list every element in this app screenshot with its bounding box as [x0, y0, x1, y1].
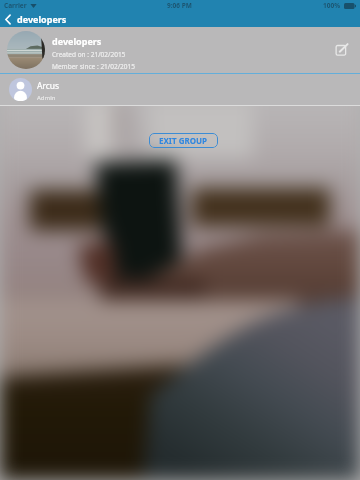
button[interactable]: developers	[0, 27, 360, 73]
staticText: Arcus	[37, 80, 60, 92]
button[interactable]: EXIT GROUP	[149, 133, 218, 148]
staticText: Carrier	[4, 1, 27, 10]
staticText: developers	[17, 13, 67, 25]
staticText: Created on : 21/02/2015	[52, 50, 126, 59]
staticText: 100%	[323, 1, 341, 10]
staticText: Member since : 21/02/2015	[52, 62, 135, 71]
staticText: Admin	[37, 94, 56, 102]
staticText: developers	[52, 35, 102, 47]
staticText: 9:06 PM	[167, 1, 192, 10]
staticText: EXIT GROUP	[159, 135, 208, 146]
button[interactable]: Back	[0, 11, 75, 27]
button[interactable]: Edit group	[329, 37, 355, 63]
button[interactable]: Arcus	[0, 74, 360, 105]
